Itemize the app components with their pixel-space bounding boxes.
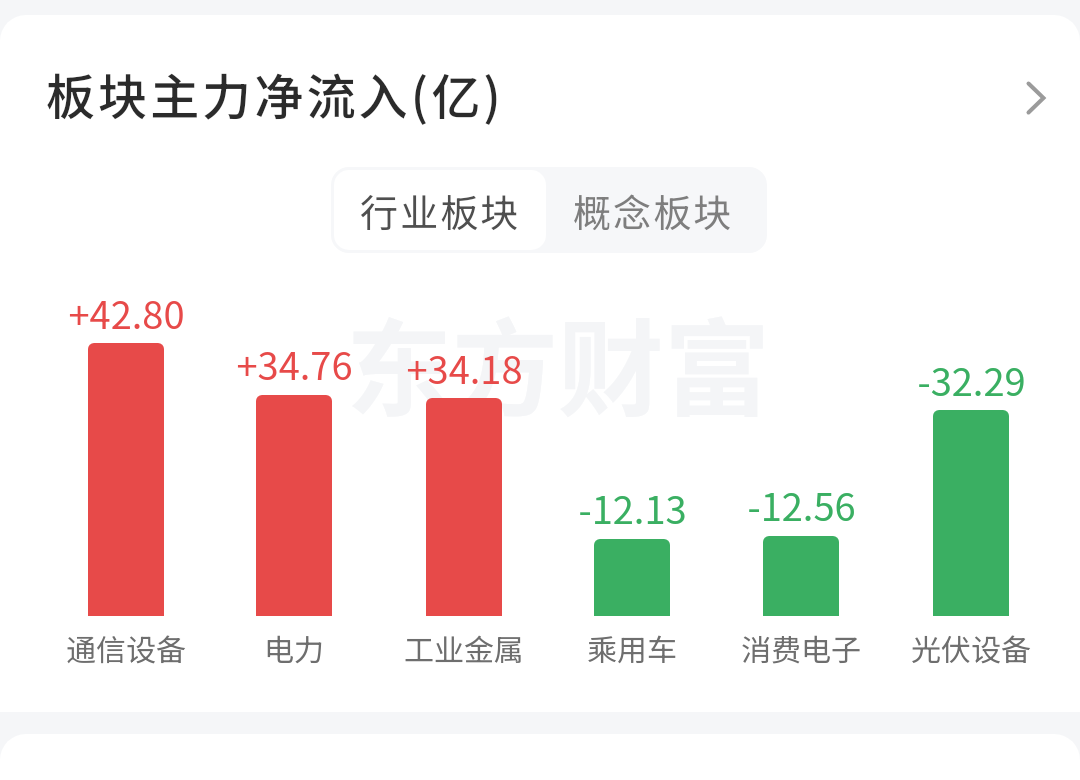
staticText: 乘用车 [587,626,677,669]
staticText: 消费电子 [741,626,861,669]
button[interactable]: 消费电子 [723,280,879,665]
button[interactable]: 概念板块 [546,170,761,250]
button[interactable]: 行业板块 [334,170,546,250]
staticText: 通信设备 [66,626,186,669]
other: More [1010,67,1062,119]
staticText: 光伏设备 [911,626,1031,669]
staticText: 行业板块 [360,183,521,238]
button[interactable]: 乘用车 [554,280,710,665]
staticText: 工业金属 [404,626,524,669]
staticText: -12.13 [578,480,687,535]
staticText: -12.56 [747,477,856,532]
button[interactable]: 电力 [216,280,372,665]
button[interactable]: 工业金属 [386,280,542,665]
staticText: -32.29 [917,352,1026,407]
staticText: 概念板块 [573,183,734,238]
button[interactable]: 通信设备 [48,280,204,665]
staticText: 东方财富 [346,285,770,438]
staticText: +34.18 [406,340,523,395]
staticText: +34.76 [236,336,353,391]
staticText: 电力 [264,626,324,669]
button[interactable]: 板块主力净流入(亿) [0,39,1080,147]
staticText: +42.80 [68,285,185,340]
button[interactable]: 光伏设备 [893,280,1049,665]
staticText: 板块主力净流入(亿) [46,58,504,129]
